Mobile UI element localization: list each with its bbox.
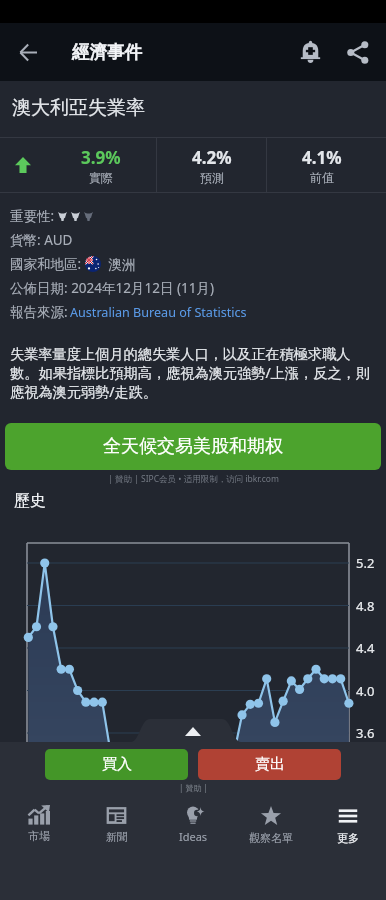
staticText: | 贊助 | SIPC会员 • 适用限制，访问 ibkr.com	[108, 473, 279, 485]
staticText: 報告來源:	[10, 303, 68, 321]
button[interactable]: 更多	[309, 797, 386, 853]
staticText: 觀察名單	[249, 831, 293, 845]
staticText: 4.0	[356, 682, 375, 700]
staticText: 數。如果指標比預期高，應視為澳元強勢/上漲，反之，則	[10, 363, 370, 382]
staticText: 新聞	[106, 830, 128, 844]
staticText: | 贊助 |	[179, 782, 208, 793]
staticText: 4.2%	[192, 146, 232, 169]
button[interactable]: 3.9%	[46, 138, 156, 192]
button[interactable]: 觀察名單	[232, 797, 309, 853]
button[interactable]: Back	[0, 23, 57, 81]
staticText: 市場	[28, 829, 50, 843]
button[interactable]: Australian Bureau of Statistics	[70, 304, 247, 321]
staticText: 3.6	[356, 724, 375, 742]
staticText: 國家和地區:	[10, 255, 85, 273]
staticText: 公佈日期: 2024年12月12日 (11月)	[10, 279, 214, 297]
button[interactable]: Add alert	[286, 23, 334, 81]
staticText: 失業率量度上個月的總失業人口，以及正在積極求職人	[10, 345, 351, 363]
staticText: 4.8	[356, 597, 375, 615]
staticText: 澳洲	[108, 256, 135, 273]
button[interactable]: Ideas	[155, 797, 232, 853]
staticText: 3.9%	[81, 146, 121, 169]
button[interactable]: 4.1%	[267, 138, 376, 192]
staticText: 買入	[102, 755, 132, 774]
staticText: 5.2	[356, 554, 375, 572]
staticText: 歷史	[14, 491, 46, 511]
staticText: 重要性:	[10, 207, 58, 225]
button[interactable]: 買入	[45, 749, 188, 780]
staticText: 4.4	[356, 639, 375, 657]
button[interactable]: 全天候交易美股和期权	[5, 423, 381, 470]
button[interactable]: 新聞	[78, 797, 155, 853]
staticText: 全天候交易美股和期权	[103, 435, 283, 458]
staticText: 4.1%	[302, 146, 342, 169]
staticText: 貨幣: AUD	[10, 231, 73, 249]
staticText: 前值	[310, 170, 334, 185]
button[interactable]: 4.2%	[157, 138, 266, 192]
button[interactable]: Share	[334, 23, 382, 81]
staticText: Ideas	[179, 829, 208, 844]
staticText: 預測	[200, 170, 224, 185]
staticText: 應視為澳元弱勢/走跌。	[10, 382, 158, 401]
staticText: 經濟事件	[72, 41, 142, 63]
staticText: 更多	[337, 831, 359, 845]
button[interactable]: 市場	[0, 797, 78, 853]
button[interactable]: 賣出	[198, 749, 341, 780]
staticText: 實際	[89, 170, 113, 185]
staticText: 澳大利亞失業率	[12, 96, 145, 120]
staticText: 賣出	[255, 755, 285, 774]
